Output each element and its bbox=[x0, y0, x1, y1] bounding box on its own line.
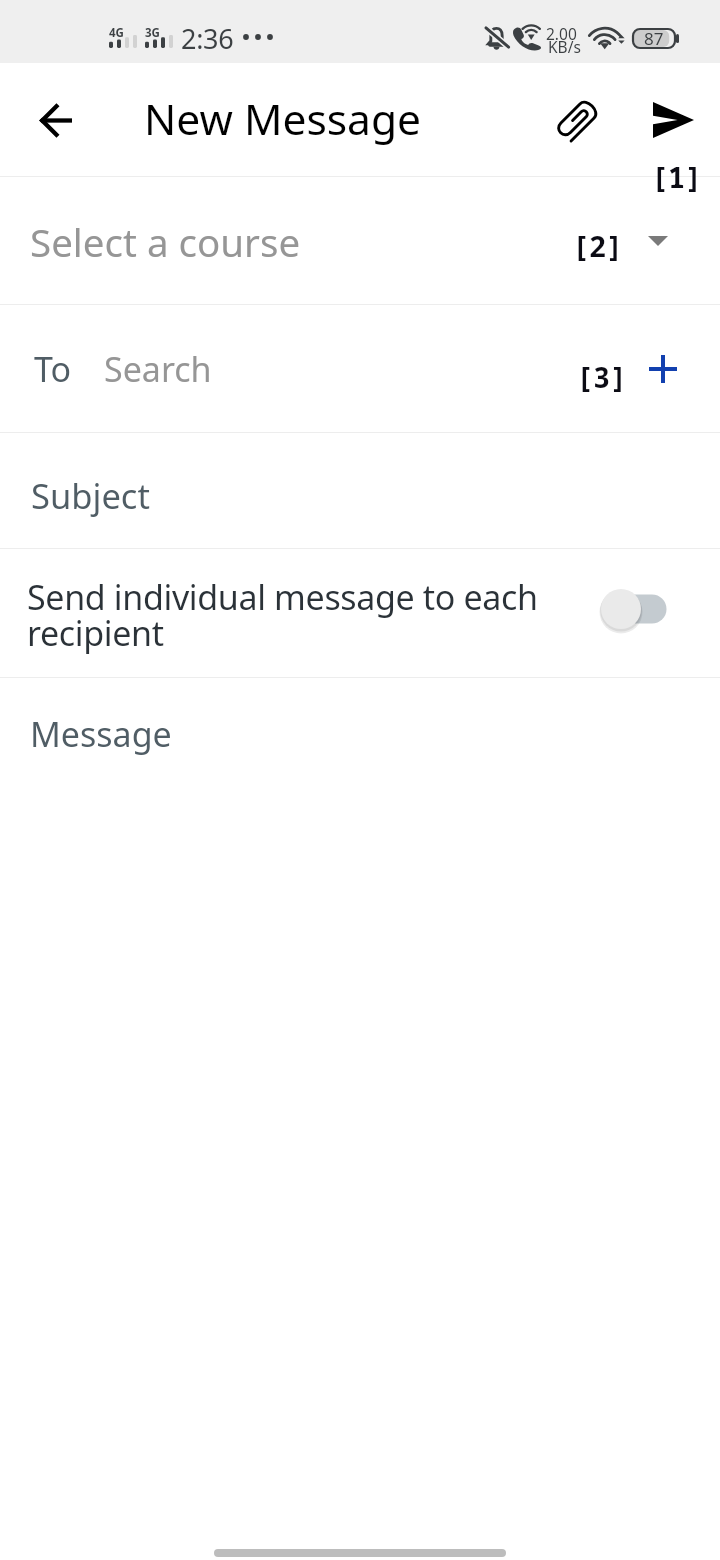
staticText: 87 bbox=[644, 27, 664, 50]
staticText: Select a course bbox=[30, 216, 301, 268]
button[interactable]: Message bbox=[0, 678, 720, 1560]
staticText: [3] bbox=[576, 358, 628, 397]
staticText: [2] bbox=[572, 227, 624, 266]
button[interactable]: Back bbox=[22, 86, 90, 154]
staticText: [1] bbox=[651, 158, 703, 197]
staticText: New Message bbox=[144, 90, 422, 148]
staticText: Send individual message to each recipien… bbox=[27, 574, 575, 656]
button[interactable]: Attach file bbox=[539, 82, 615, 158]
staticText: 3G bbox=[145, 25, 160, 41]
button[interactable]: Select a course bbox=[0, 177, 720, 304]
staticText: Message bbox=[30, 711, 172, 757]
staticText: 4G bbox=[109, 25, 124, 41]
staticText: 2.00 bbox=[546, 23, 577, 44]
staticText: 2:36 bbox=[181, 20, 234, 57]
button[interactable]: Send individual message to each recipien… bbox=[0, 549, 720, 677]
staticText: To bbox=[34, 346, 72, 392]
staticText: KB/s bbox=[548, 36, 581, 57]
button[interactable]: Add recipient bbox=[628, 334, 698, 404]
button[interactable]: To bbox=[0, 305, 720, 432]
staticText: Subject bbox=[31, 472, 150, 519]
button[interactable]: Send individual message toggle bbox=[592, 574, 696, 644]
button[interactable]: Open course list bbox=[640, 223, 676, 259]
button[interactable]: Subject bbox=[0, 433, 720, 548]
staticText: Search bbox=[104, 346, 212, 392]
button[interactable]: Send bbox=[635, 82, 711, 158]
